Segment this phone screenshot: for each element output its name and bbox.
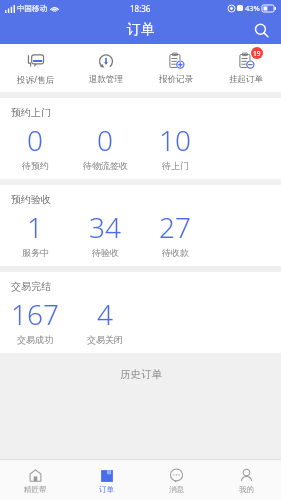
- button[interactable]: 10: [140, 121, 210, 171]
- button[interactable]: 4: [70, 295, 140, 345]
- staticText: 27: [159, 208, 191, 246]
- staticText: 交易关闭: [87, 334, 123, 345]
- staticText: 我的: [239, 485, 254, 494]
- button[interactable]: 167: [0, 295, 70, 345]
- button[interactable]: 精匠帮: [0, 467, 71, 494]
- staticText: 挂起订单: [229, 74, 263, 85]
- button[interactable]: 消息: [141, 467, 211, 494]
- staticText: 报价记录: [159, 74, 193, 85]
- button[interactable]: 投诉/售后: [0, 51, 71, 86]
- staticText: 交易成功: [17, 334, 53, 345]
- staticText: 交易完结: [11, 280, 51, 293]
- staticText: 历史订单: [120, 368, 162, 381]
- staticText: 1: [27, 208, 43, 246]
- button[interactable]: Search: [249, 18, 273, 42]
- button[interactable]: 27: [140, 208, 210, 258]
- button[interactable]: 1: [0, 208, 70, 258]
- staticText: 0: [27, 121, 43, 159]
- button[interactable]: 我的: [211, 467, 281, 494]
- staticText: 0: [97, 121, 113, 159]
- staticText: 4: [97, 295, 113, 333]
- staticText: 订单: [99, 485, 114, 494]
- button[interactable]: 0: [70, 121, 140, 171]
- staticText: 退款管理: [89, 74, 123, 85]
- staticText: 18:36: [130, 3, 151, 14]
- staticText: 34: [89, 208, 121, 246]
- button[interactable]: 报价记录: [141, 51, 211, 85]
- staticText: 19: [253, 49, 261, 58]
- staticText: 待预约: [22, 160, 49, 171]
- staticText: 中国移动: [17, 4, 47, 13]
- staticText: 精匠帮: [24, 485, 47, 494]
- staticText: 待收款: [162, 247, 189, 258]
- staticText: 待上门: [162, 160, 189, 171]
- staticText: 10: [159, 121, 191, 159]
- button[interactable]: 历史订单: [0, 359, 281, 389]
- button[interactable]: 退款管理: [71, 51, 141, 85]
- button[interactable]: 0: [0, 121, 70, 171]
- staticText: 预约上门: [11, 106, 51, 119]
- button[interactable]: 订单: [71, 467, 141, 494]
- staticText: 43%: [245, 3, 260, 13]
- staticText: 167: [11, 295, 59, 333]
- staticText: 订单: [127, 21, 155, 39]
- staticText: 投诉/售后: [17, 74, 55, 86]
- staticText: 待物流签收: [83, 160, 128, 171]
- staticText: 服务中: [22, 247, 49, 258]
- button[interactable]: 19: [211, 51, 281, 85]
- staticText: 消息: [169, 485, 184, 494]
- staticText: 预约验收: [11, 193, 51, 206]
- staticText: 待验收: [92, 247, 119, 258]
- button[interactable]: 34: [70, 208, 140, 258]
